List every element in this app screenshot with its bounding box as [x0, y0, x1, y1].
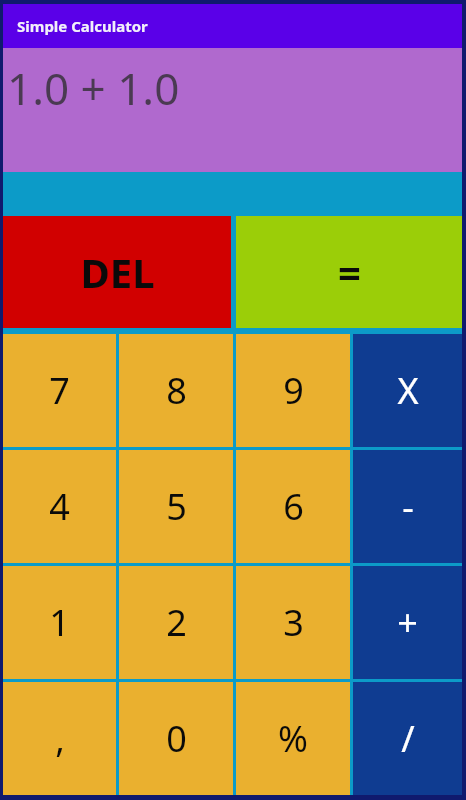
staticText: 8 — [166, 366, 187, 415]
staticText: 3 — [283, 598, 304, 647]
staticText: 5 — [166, 482, 187, 531]
button[interactable]: = — [236, 216, 462, 328]
button[interactable]: X — [353, 334, 462, 447]
button[interactable]: 9 — [236, 334, 350, 447]
staticText: 1.0 + 1.0 — [7, 58, 180, 118]
staticText: Simple Calculator — [17, 16, 148, 36]
staticText: , — [55, 714, 65, 763]
staticText: DEL — [80, 245, 155, 299]
button[interactable]: 4 — [3, 450, 116, 563]
button[interactable]: 0 — [119, 682, 233, 795]
button[interactable]: - — [353, 450, 462, 563]
button[interactable]: DEL — [3, 216, 231, 328]
button[interactable]: 2 — [119, 566, 233, 679]
button[interactable]: , — [3, 682, 116, 795]
staticText: 6 — [283, 482, 304, 531]
staticText: % — [278, 714, 308, 763]
button[interactable]: + — [353, 566, 462, 679]
staticText: 2 — [166, 598, 187, 647]
button[interactable]: / — [353, 682, 462, 795]
button[interactable]: % — [236, 682, 350, 795]
staticText: 9 — [283, 366, 304, 415]
staticText: 7 — [49, 366, 70, 415]
staticText: 1 — [49, 598, 70, 647]
staticText: X — [397, 366, 419, 415]
button[interactable]: 3 — [236, 566, 350, 679]
button[interactable]: 6 — [236, 450, 350, 563]
button[interactable]: 1 — [3, 566, 116, 679]
staticText: 0 — [166, 714, 187, 763]
button[interactable]: 5 — [119, 450, 233, 563]
staticText: / — [401, 714, 415, 763]
staticText: = — [338, 245, 361, 299]
staticText: + — [397, 598, 418, 647]
button[interactable]: 7 — [3, 334, 116, 447]
staticText: 4 — [49, 482, 70, 531]
staticText: - — [402, 482, 414, 531]
button[interactable]: 8 — [119, 334, 233, 447]
